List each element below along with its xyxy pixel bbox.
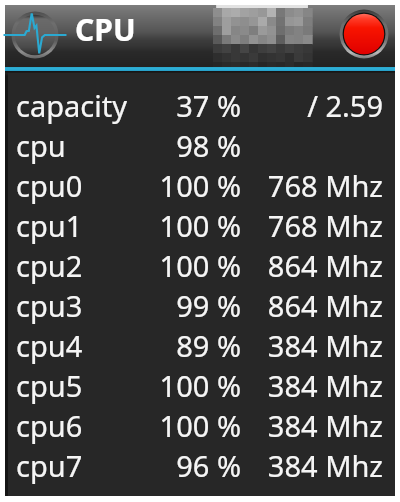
staticText: cpu0 <box>16 166 136 205</box>
staticText: cpu <box>16 126 136 165</box>
button[interactable]: cpu4 <box>5 325 395 365</box>
staticText: 864 Mhz <box>253 286 383 325</box>
staticText: 768 Mhz <box>253 166 383 205</box>
button[interactable]: Stop <box>338 10 390 62</box>
button[interactable]: cpu6 <box>5 405 395 445</box>
staticText: 384 Mhz <box>253 326 383 365</box>
staticText: 864 Mhz <box>253 246 383 285</box>
staticText: 384 Mhz <box>253 366 383 405</box>
button[interactable]: CPU monitor <box>6 7 64 65</box>
staticText: 100 % <box>136 406 241 445</box>
staticText: 384 Mhz <box>253 446 383 485</box>
button[interactable]: cpu2 <box>5 245 395 285</box>
staticText: cpu1 <box>16 206 136 245</box>
staticText: 99 % <box>136 286 241 325</box>
button[interactable]: cpu5 <box>5 365 395 405</box>
staticText: 100 % <box>136 246 241 285</box>
staticText: 100 % <box>136 206 241 245</box>
staticText: cpu6 <box>16 406 136 445</box>
staticText: cpu3 <box>16 286 136 325</box>
button[interactable]: cpu0 <box>5 165 395 205</box>
button[interactable]: capacity <box>5 85 395 125</box>
staticText: 98 % <box>136 126 241 165</box>
staticText: 100 % <box>136 166 241 205</box>
staticText: 89 % <box>136 326 241 365</box>
staticText: 96 % <box>136 446 241 485</box>
staticText: cpu7 <box>16 446 136 485</box>
staticText: cpu4 <box>16 326 136 365</box>
staticText: cpu5 <box>16 366 136 405</box>
staticText: 768 Mhz <box>253 206 383 245</box>
staticText: capacity <box>16 86 136 125</box>
staticText: / 2.59 <box>253 86 383 125</box>
staticText: 100 % <box>136 366 241 405</box>
button[interactable]: cpu7 <box>5 445 395 485</box>
button[interactable]: cpu1 <box>5 205 395 245</box>
staticText: CPU <box>75 9 136 50</box>
button[interactable]: cpu3 <box>5 285 395 325</box>
staticText: cpu2 <box>16 246 136 285</box>
staticText: 37 % <box>136 86 241 125</box>
staticText: 384 Mhz <box>253 406 383 445</box>
button[interactable]: cpu <box>5 125 395 165</box>
